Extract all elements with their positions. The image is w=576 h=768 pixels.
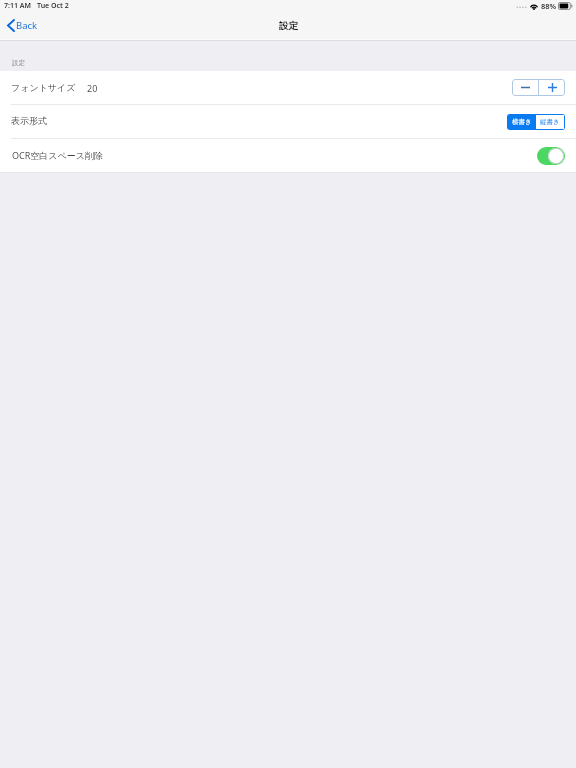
staticText: フォントサイズ — [11, 82, 76, 93]
button[interactable]: Increase font size — [539, 79, 565, 96]
staticText: 7:11 AM — [4, 1, 31, 11]
staticText: OCR空白スペース削除 — [12, 149, 103, 161]
button[interactable]: OCR空白スペース削除 — [0, 139, 576, 172]
staticText: 20 — [87, 82, 98, 94]
button[interactable]: 縦書き — [536, 115, 564, 129]
staticText: 表示形式 — [11, 115, 47, 126]
button[interactable]: Toggle OCR whitespace removal — [537, 147, 565, 165]
staticText: Back — [16, 19, 38, 32]
button[interactable]: 表示形式 — [0, 105, 576, 138]
button[interactable]: 横書き — [507, 114, 536, 130]
button[interactable]: Back — [7, 14, 38, 37]
staticText: 横書き — [512, 118, 532, 126]
button[interactable]: Decrease font size — [512, 79, 538, 96]
button[interactable]: フォントサイズ — [0, 71, 576, 104]
staticText: Tue Oct 2 — [37, 1, 69, 11]
staticText: 設定 — [279, 20, 298, 32]
staticText: 設定 — [12, 59, 25, 67]
staticText: 縦書き — [540, 118, 560, 126]
staticText: 88% — [541, 1, 557, 11]
